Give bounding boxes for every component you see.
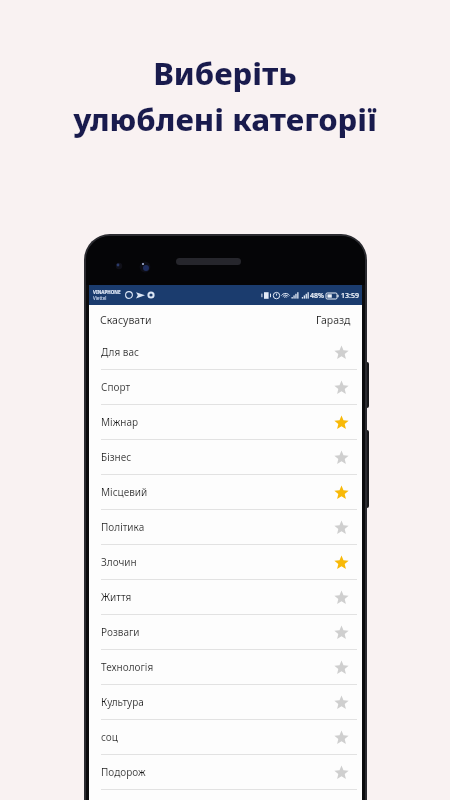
staticText: Гаразд: [316, 313, 351, 327]
staticText: Технологія: [101, 660, 154, 674]
staticText: улюблені категорії: [73, 98, 377, 140]
other: Add favourite: [332, 623, 350, 641]
staticText: Злочин: [101, 555, 137, 569]
staticText: Виберіть: [153, 52, 297, 94]
other: Add favourite: [332, 343, 350, 361]
staticText: Життя: [101, 590, 132, 604]
button[interactable]: Життя: [89, 580, 362, 615]
button[interactable]: соц: [89, 720, 362, 755]
button[interactable]: Розваги: [89, 615, 362, 650]
staticText: Місцевий: [101, 485, 148, 499]
staticText: Бізнес: [101, 450, 132, 464]
other: Add favourite: [332, 693, 350, 711]
button[interactable]: Гаразд: [308, 307, 362, 333]
button[interactable]: Для вас: [89, 335, 362, 370]
button[interactable]: Технологія: [89, 650, 362, 685]
staticText: Культура: [101, 695, 144, 709]
other: Add favourite: [332, 728, 350, 746]
other: Remove favourite: [332, 413, 350, 431]
other: Remove favourite: [332, 553, 350, 571]
button[interactable]: Міжнар: [89, 405, 362, 440]
button[interactable]: Подорож: [89, 755, 362, 790]
staticText: Політика: [101, 520, 145, 534]
staticText: соц: [101, 730, 118, 744]
button[interactable]: Політика: [89, 510, 362, 545]
other: Remove favourite: [332, 483, 350, 501]
button[interactable]: Спорт: [89, 370, 362, 405]
staticText: 48%: [310, 291, 324, 301]
button[interactable]: Місцевий: [89, 475, 362, 510]
staticText: Viettel: [93, 295, 107, 301]
other: Add favourite: [332, 763, 350, 781]
staticText: Подорож: [101, 765, 146, 779]
other: Add favourite: [332, 518, 350, 536]
staticText: Скасувати: [100, 313, 152, 327]
button[interactable]: Злочин: [89, 545, 362, 580]
other: Add favourite: [332, 448, 350, 466]
other: Add favourite: [332, 378, 350, 396]
button[interactable]: Скасувати: [89, 307, 160, 333]
staticText: Розваги: [101, 625, 140, 639]
staticText: VINAPHONE: [93, 289, 121, 295]
staticText: Для вас: [101, 345, 139, 359]
staticText: Міжнар: [101, 415, 139, 429]
button[interactable]: Бізнес: [89, 440, 362, 475]
other: Add favourite: [332, 658, 350, 676]
staticText: Спорт: [101, 380, 131, 394]
staticText: 13:59: [341, 291, 359, 301]
other: Add favourite: [332, 588, 350, 606]
button[interactable]: Культура: [89, 685, 362, 720]
